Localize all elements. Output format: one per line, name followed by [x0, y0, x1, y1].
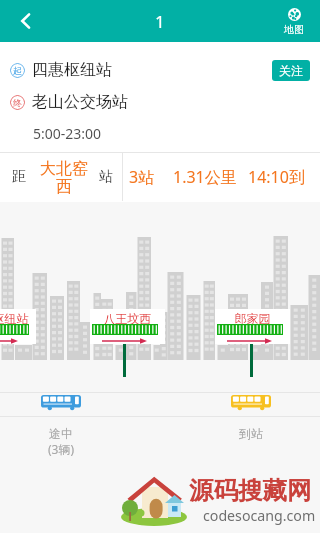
staticText: 5:00-23:00 [33, 124, 102, 143]
staticText: 四惠枢纽站 [32, 60, 112, 80]
staticText: 1.31公里 [173, 166, 237, 188]
staticText: 距 [12, 168, 26, 186]
staticText: 四惠枢纽站 [0, 311, 36, 326]
staticText: 3站 [129, 166, 155, 188]
staticText: 关注 [279, 63, 303, 78]
button[interactable]: 关注 [272, 60, 310, 81]
staticText: 源码搜藏网 [189, 475, 312, 506]
staticText: codesocang.com [203, 506, 316, 525]
staticText: 郎家园 [215, 311, 290, 326]
staticText: 站 [99, 168, 113, 186]
staticText: 14:10到 [248, 166, 305, 188]
staticText: 终 [13, 97, 22, 108]
staticText: 起 [13, 65, 22, 76]
button[interactable]: Map [271, 0, 317, 42]
staticText: 大北窑西 [40, 159, 88, 196]
staticText: 到站 [239, 426, 263, 441]
staticText: 地图 [284, 23, 304, 36]
staticText: 八王坟西 [90, 311, 165, 326]
staticText: (3辆) [48, 441, 75, 457]
staticText: 途中 [49, 426, 73, 441]
button[interactable]: Back [0, 0, 52, 42]
staticText: 1 [155, 10, 165, 33]
staticText: 老山公交场站 [32, 92, 128, 112]
